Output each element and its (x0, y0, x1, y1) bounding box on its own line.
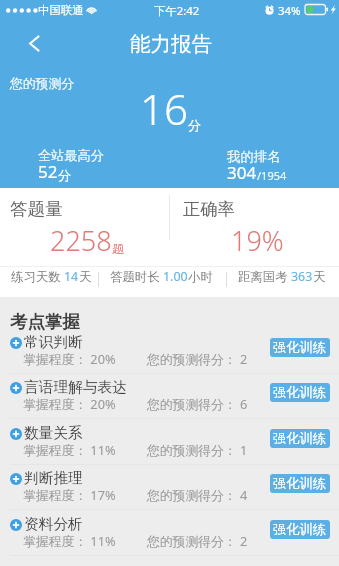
button[interactable]: 数量关系 (0, 419, 339, 464)
staticText: 判断推理 (24, 469, 83, 488)
staticText: 常识判断 (24, 333, 83, 352)
staticText: 1.00 (163, 268, 188, 285)
staticText: 您的预测得分： 1 (147, 441, 248, 458)
staticText: 正确率 (183, 198, 235, 220)
staticText: 距离国考 (238, 268, 291, 285)
staticText: 14 (64, 268, 79, 285)
staticText: 掌握程度： 11% (23, 532, 116, 549)
staticText: 中国联通 (38, 3, 84, 17)
staticText: 363 (291, 268, 313, 285)
staticText: 全站最高分 (38, 147, 104, 164)
button[interactable]: 强化训练 (270, 429, 330, 448)
button[interactable]: 资料分析 (0, 510, 339, 555)
staticText: 掌握程度： 17% (23, 486, 116, 503)
staticText: 答题时长 (110, 268, 163, 285)
staticText: 答题量 (10, 198, 63, 220)
staticText: 您的预测得分： 2 (147, 532, 248, 549)
staticText: 分 (188, 117, 201, 133)
staticText: 资料分析 (24, 515, 83, 534)
button[interactable]: 言语理解与表达 (0, 373, 339, 418)
button[interactable]: Back (20, 29, 48, 57)
button[interactable]: 判断推理 (0, 464, 339, 509)
staticText: /1954 (257, 168, 287, 183)
staticText: 数量关系 (24, 424, 83, 443)
staticText: 304 (227, 161, 257, 184)
button[interactable]: 强化训练 (270, 383, 330, 402)
staticText: 掌握程度： 11% (23, 441, 116, 458)
staticText: 34% (278, 3, 301, 19)
staticText: 小时 (188, 269, 213, 285)
staticText: 天 (79, 269, 92, 285)
staticText: 强化训练 (273, 521, 327, 538)
staticText: 考点掌握 (10, 311, 80, 333)
staticText: 下午2:42 (154, 3, 200, 19)
button[interactable]: 强化训练 (270, 520, 330, 539)
staticText: 您的预测得分： 2 (147, 350, 248, 367)
staticText: 强化训练 (273, 339, 327, 356)
staticText: 您的预测分 (10, 76, 74, 92)
staticText: 我的排名 (227, 148, 281, 165)
staticText: 掌握程度： 20% (23, 395, 116, 412)
staticText: 2258 (50, 222, 112, 259)
staticText: 能力报告 (130, 31, 212, 57)
staticText: 分 (58, 167, 71, 183)
staticText: 52 (38, 160, 58, 183)
staticText: 题 (112, 241, 124, 256)
staticText: 练习天数 (11, 268, 64, 285)
staticText: 强化训练 (273, 430, 327, 447)
staticText: 强化训练 (273, 384, 327, 401)
staticText: 您的预测得分： 6 (147, 395, 248, 412)
staticText: 言语理解与表达 (24, 378, 127, 397)
staticText: 19% (231, 222, 284, 259)
staticText: 掌握程度： 20% (23, 350, 116, 367)
button[interactable]: 常识判断 (0, 328, 339, 373)
button[interactable]: 强化训练 (270, 474, 330, 493)
button[interactable]: 强化训练 (270, 338, 330, 357)
staticText: 天 (313, 269, 326, 285)
staticText: 16 (140, 80, 188, 137)
staticText: 您的预测得分： 4 (147, 486, 248, 503)
staticText: 强化训练 (273, 475, 327, 492)
